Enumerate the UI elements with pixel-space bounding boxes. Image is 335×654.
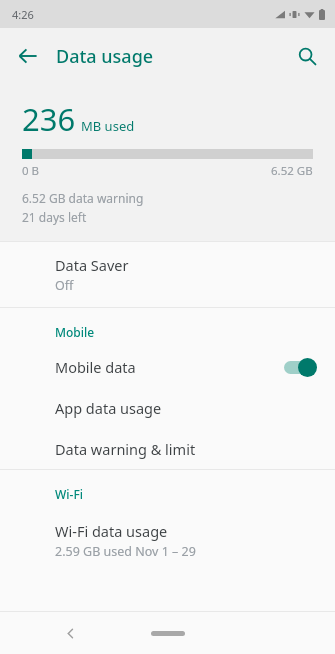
staticText: Data usage: [56, 44, 154, 69]
staticText: Data Saver: [55, 255, 129, 275]
staticText: 236: [22, 98, 76, 140]
staticText: Data warning & limit: [55, 439, 196, 459]
staticText: Mobile data: [55, 357, 136, 377]
button[interactable]: Back: [52, 615, 88, 651]
staticText: 4:26: [12, 7, 34, 22]
button[interactable]: Search: [283, 32, 331, 80]
staticText: Wi-Fi: [55, 486, 83, 502]
staticText: 21 days left: [22, 209, 87, 225]
button[interactable]: Data Saver: [0, 242, 335, 307]
button[interactable]: Data warning & limit: [0, 428, 335, 469]
button[interactable]: Back: [4, 32, 52, 80]
staticText: 6.52 GB data warning: [22, 190, 144, 206]
button[interactable]: Home: [151, 631, 185, 636]
staticText: MB used: [81, 117, 135, 135]
staticText: 0 B: [22, 163, 40, 179]
button[interactable]: Wi-Fi data usage: [0, 508, 335, 573]
staticText: 6.52 GB: [271, 163, 313, 179]
staticText: 2.59 GB used Nov 1 – 29: [55, 543, 196, 560]
staticText: Off: [55, 277, 74, 294]
staticText: Mobile: [55, 324, 95, 340]
button[interactable]: App data usage: [0, 387, 335, 428]
button[interactable]: Mobile data: [0, 346, 335, 387]
staticText: App data usage: [55, 398, 162, 418]
staticText: Wi-Fi data usage: [55, 521, 168, 541]
